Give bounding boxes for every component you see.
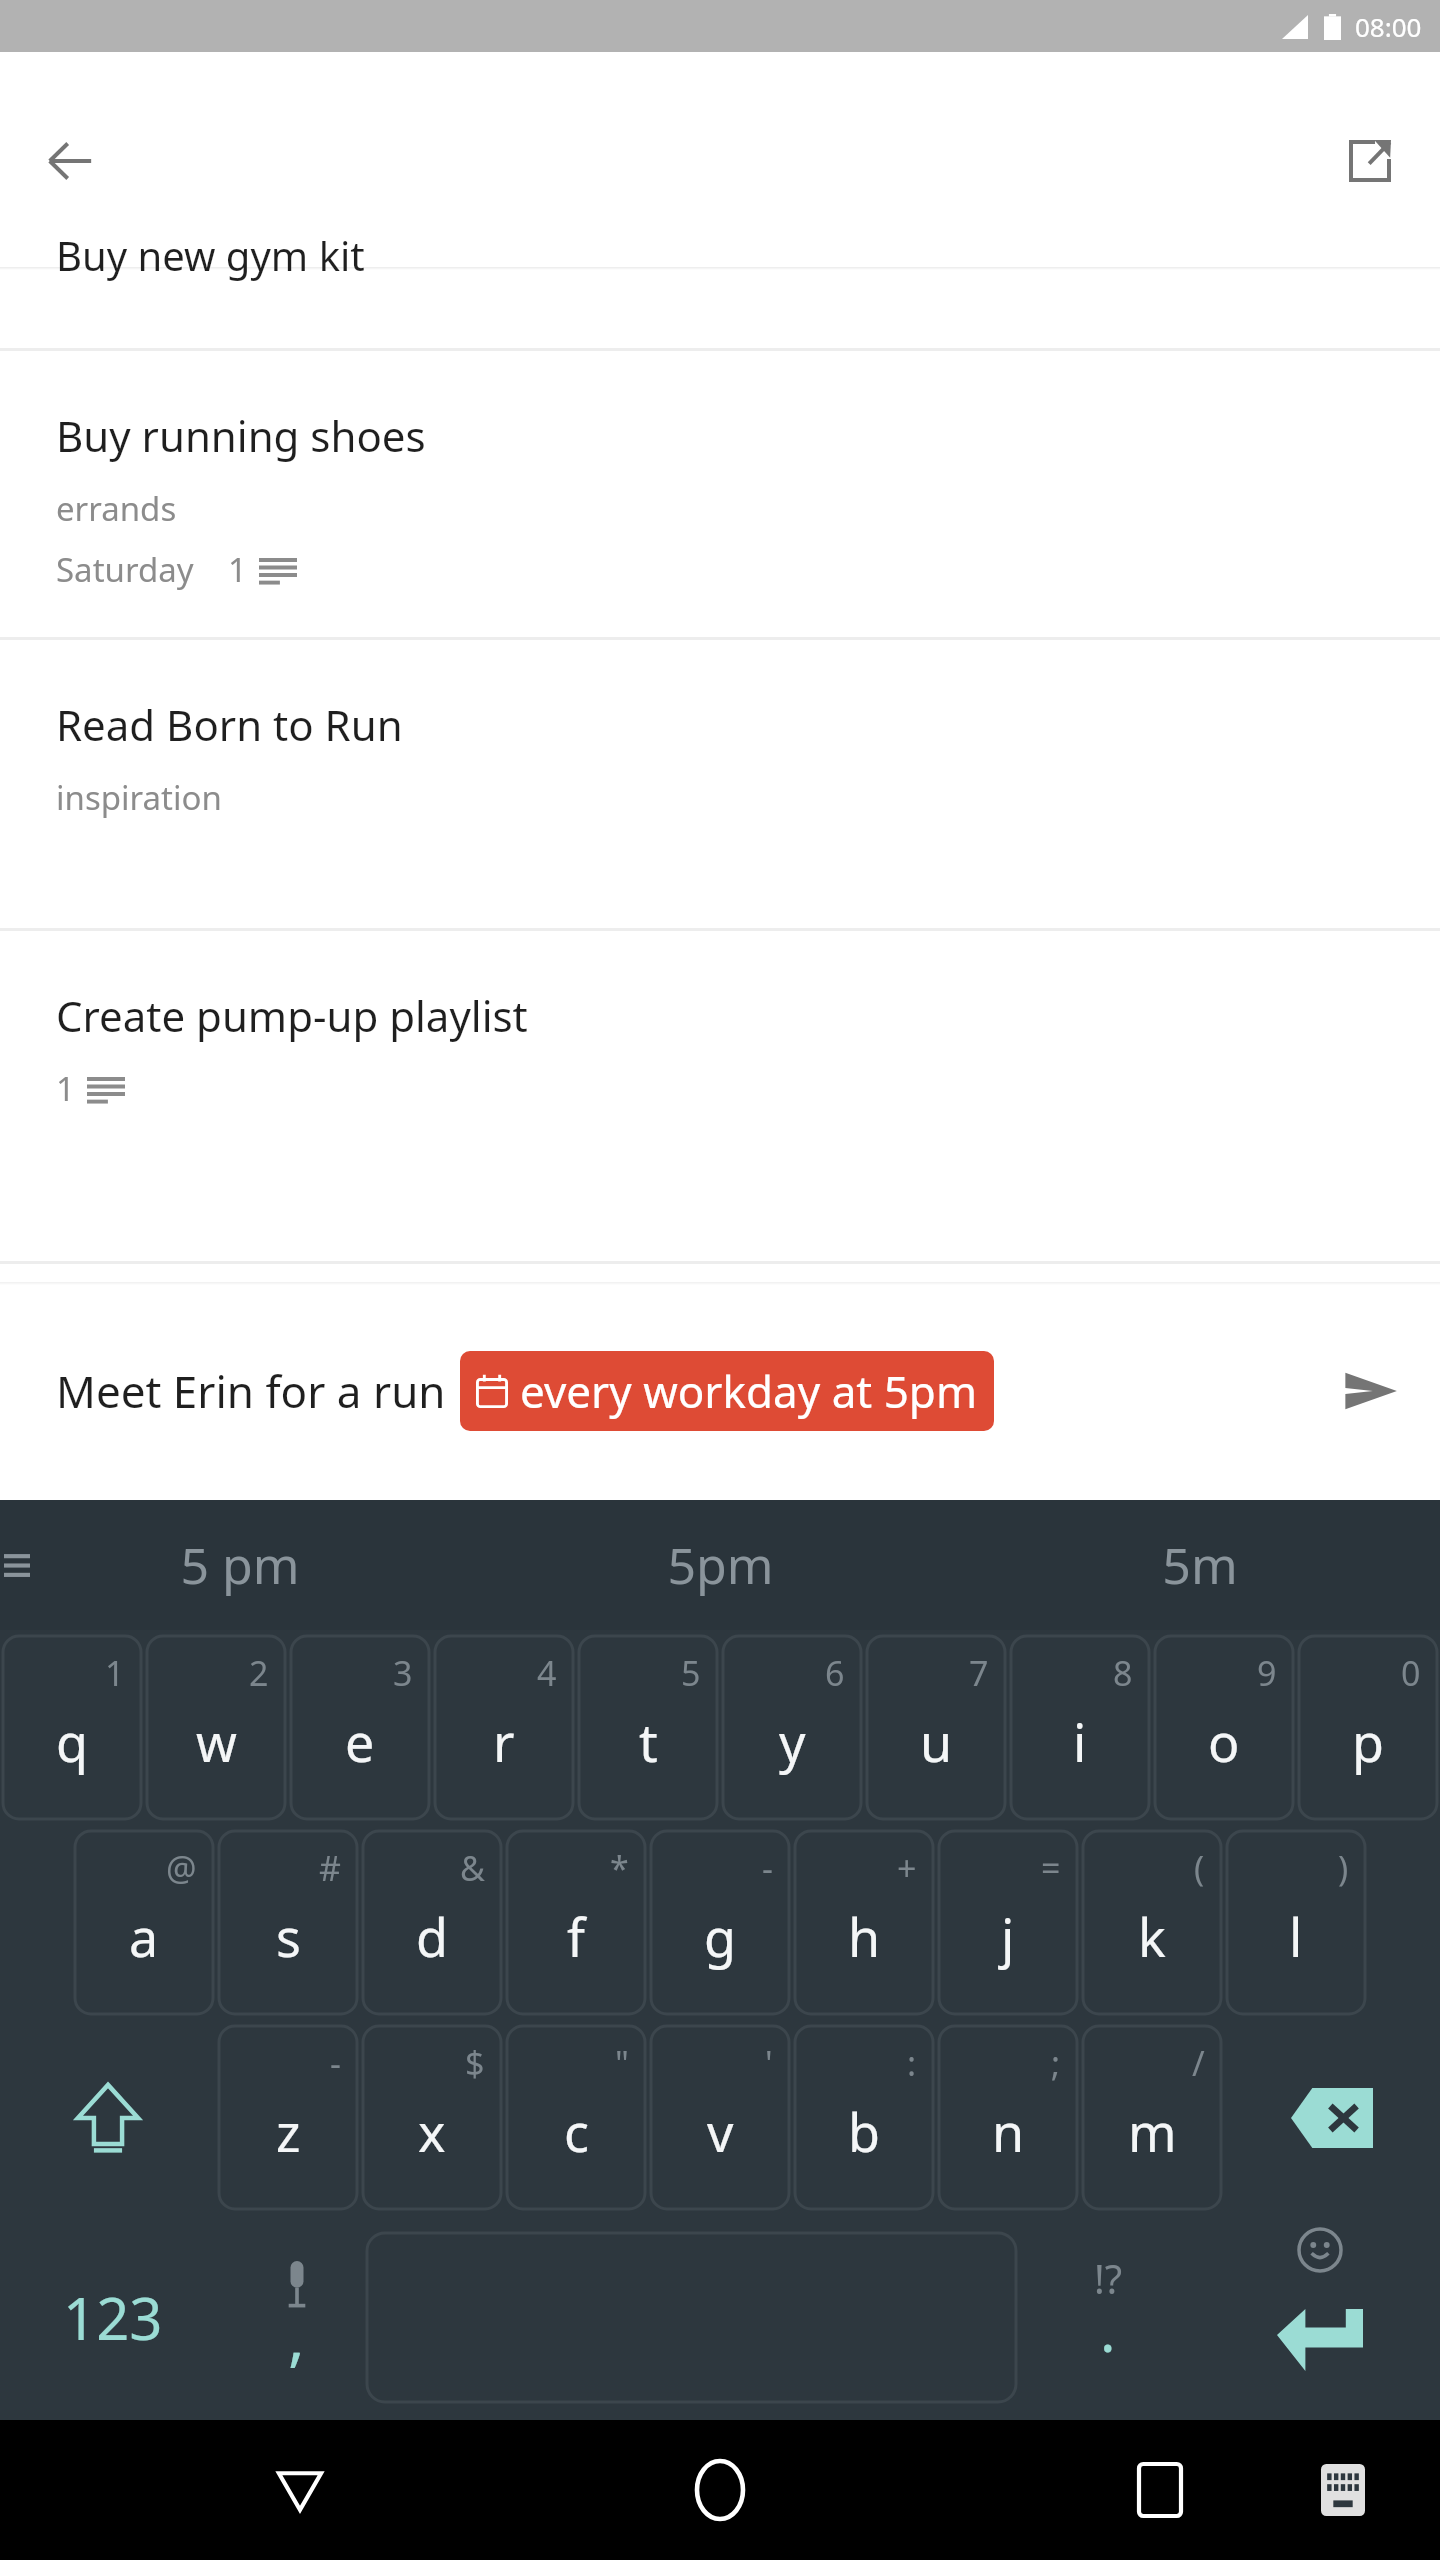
staticText: @: [166, 1845, 197, 1891]
staticText: ,: [288, 2294, 305, 2378]
button[interactable]: Send: [1324, 1345, 1416, 1437]
button[interactable]: &: [363, 1831, 501, 2014]
button[interactable]: Buy new gym kit: [0, 270, 1440, 348]
button[interactable]: 6: [723, 1636, 861, 1819]
staticText: Buy running shoes: [56, 407, 426, 464]
staticText: j: [1001, 1901, 1015, 1972]
staticText: u: [920, 1706, 953, 1777]
button[interactable]: =: [939, 1831, 1077, 2014]
button[interactable]: 2: [147, 1636, 285, 1819]
staticText: o: [1208, 1706, 1240, 1777]
staticText: Meet Erin for a run: [56, 1361, 446, 1421]
staticText: 1: [228, 547, 247, 592]
button[interactable]: #: [219, 1831, 357, 2014]
button[interactable]: -: [651, 1831, 789, 2014]
staticText: k: [1138, 1901, 1166, 1972]
button[interactable]: Comma and voice input: [226, 2215, 367, 2420]
button[interactable]: Shift: [0, 2020, 216, 2215]
staticText: 1: [56, 1066, 75, 1111]
staticText: 6: [825, 1650, 845, 1696]
staticText: /: [1192, 2040, 1205, 2086]
button[interactable]: Enter: [1200, 2215, 1440, 2420]
staticText: *: [610, 1845, 629, 1891]
button[interactable]: 7: [867, 1636, 1005, 1819]
staticText: Saturday: [56, 547, 194, 592]
staticText: t: [639, 1706, 658, 1777]
button[interactable]: @: [75, 1831, 213, 2014]
staticText: 9: [1257, 1650, 1277, 1696]
staticText: b: [848, 2096, 880, 2167]
button[interactable]: 9: [1155, 1636, 1293, 1819]
button[interactable]: $: [363, 2026, 501, 2209]
button[interactable]: -: [219, 2026, 357, 2209]
button[interactable]: every workday at 5pm: [476, 1361, 978, 1421]
button[interactable]: Switch keyboard: [1298, 2445, 1388, 2535]
button[interactable]: Recents: [1110, 2440, 1210, 2540]
button[interactable]: Read Born to Run: [0, 640, 1440, 928]
staticText: i: [1073, 1706, 1087, 1777]
staticText: 8: [1113, 1650, 1133, 1696]
button[interactable]: 4: [435, 1636, 573, 1819]
staticText: r: [493, 1706, 515, 1777]
staticText: .: [1100, 2290, 1116, 2369]
staticText: x: [418, 2096, 446, 2167]
button[interactable]: :: [795, 2026, 933, 2209]
staticText: $: [465, 2040, 485, 2086]
staticText: z: [276, 2096, 301, 2167]
button[interactable]: Back: [24, 115, 116, 207]
button[interactable]: (: [1083, 1831, 1221, 2014]
staticText: ;: [1051, 2040, 1061, 2086]
staticText: p: [1352, 1706, 1384, 1777]
button[interactable]: /: [1083, 2026, 1221, 2209]
button[interactable]: 1: [3, 1636, 141, 1819]
staticText: 5 pm: [180, 1531, 300, 1599]
staticText: 3: [393, 1650, 413, 1696]
staticText: Read Born to Run: [56, 696, 403, 753]
staticText: ): [1338, 1845, 1349, 1891]
staticText: -: [330, 2040, 341, 2086]
staticText: g: [704, 1901, 736, 1972]
button[interactable]: Backspace: [1224, 2020, 1440, 2215]
staticText: s: [276, 1901, 301, 1972]
staticText: =: [1041, 1845, 1061, 1891]
button[interactable]: *: [507, 1831, 645, 2014]
button[interactable]: Period and symbols: [1016, 2215, 1200, 2420]
staticText: 2: [249, 1650, 269, 1696]
staticText: +: [897, 1845, 917, 1891]
staticText: l: [1289, 1901, 1303, 1972]
staticText: m: [1128, 2096, 1177, 2167]
button[interactable]: 5 pm: [0, 1500, 480, 1630]
staticText: errands: [56, 486, 177, 531]
staticText: 08:00: [1355, 9, 1422, 44]
staticText: n: [992, 2096, 1025, 2167]
staticText: 1: [105, 1650, 125, 1696]
button[interactable]: Create pump-up playlist: [0, 931, 1440, 1261]
button[interactable]: 123: [0, 2215, 226, 2420]
button[interactable]: Buy running shoes: [0, 351, 1440, 637]
staticText: :: [907, 2040, 917, 2086]
button[interactable]: ;: [939, 2026, 1077, 2209]
button[interactable]: 0: [1299, 1636, 1437, 1819]
button[interactable]: ): [1227, 1831, 1365, 2014]
staticText: (: [1194, 1845, 1205, 1891]
button[interactable]: Hide keyboard: [250, 2440, 350, 2540]
button[interactable]: ': [651, 2026, 789, 2209]
button[interactable]: Home: [670, 2440, 770, 2540]
button[interactable]: 5: [579, 1636, 717, 1819]
staticText: e: [345, 1706, 375, 1777]
button[interactable]: ": [507, 2026, 645, 2209]
button[interactable]: 5m: [960, 1500, 1440, 1630]
button[interactable]: 3: [291, 1636, 429, 1819]
staticText: 5m: [1162, 1531, 1238, 1599]
button[interactable]: 5pm: [480, 1500, 960, 1630]
staticText: q: [56, 1706, 88, 1777]
button[interactable]: +: [795, 1831, 933, 2014]
button[interactable]: Open in new: [1324, 115, 1416, 207]
staticText: every workday at 5pm: [520, 1361, 978, 1421]
staticText: inspiration: [56, 775, 222, 820]
staticText: f: [567, 1901, 585, 1972]
staticText: ": [615, 2040, 629, 2086]
staticText: 123: [63, 2278, 163, 2357]
button[interactable]: 8: [1011, 1636, 1149, 1819]
